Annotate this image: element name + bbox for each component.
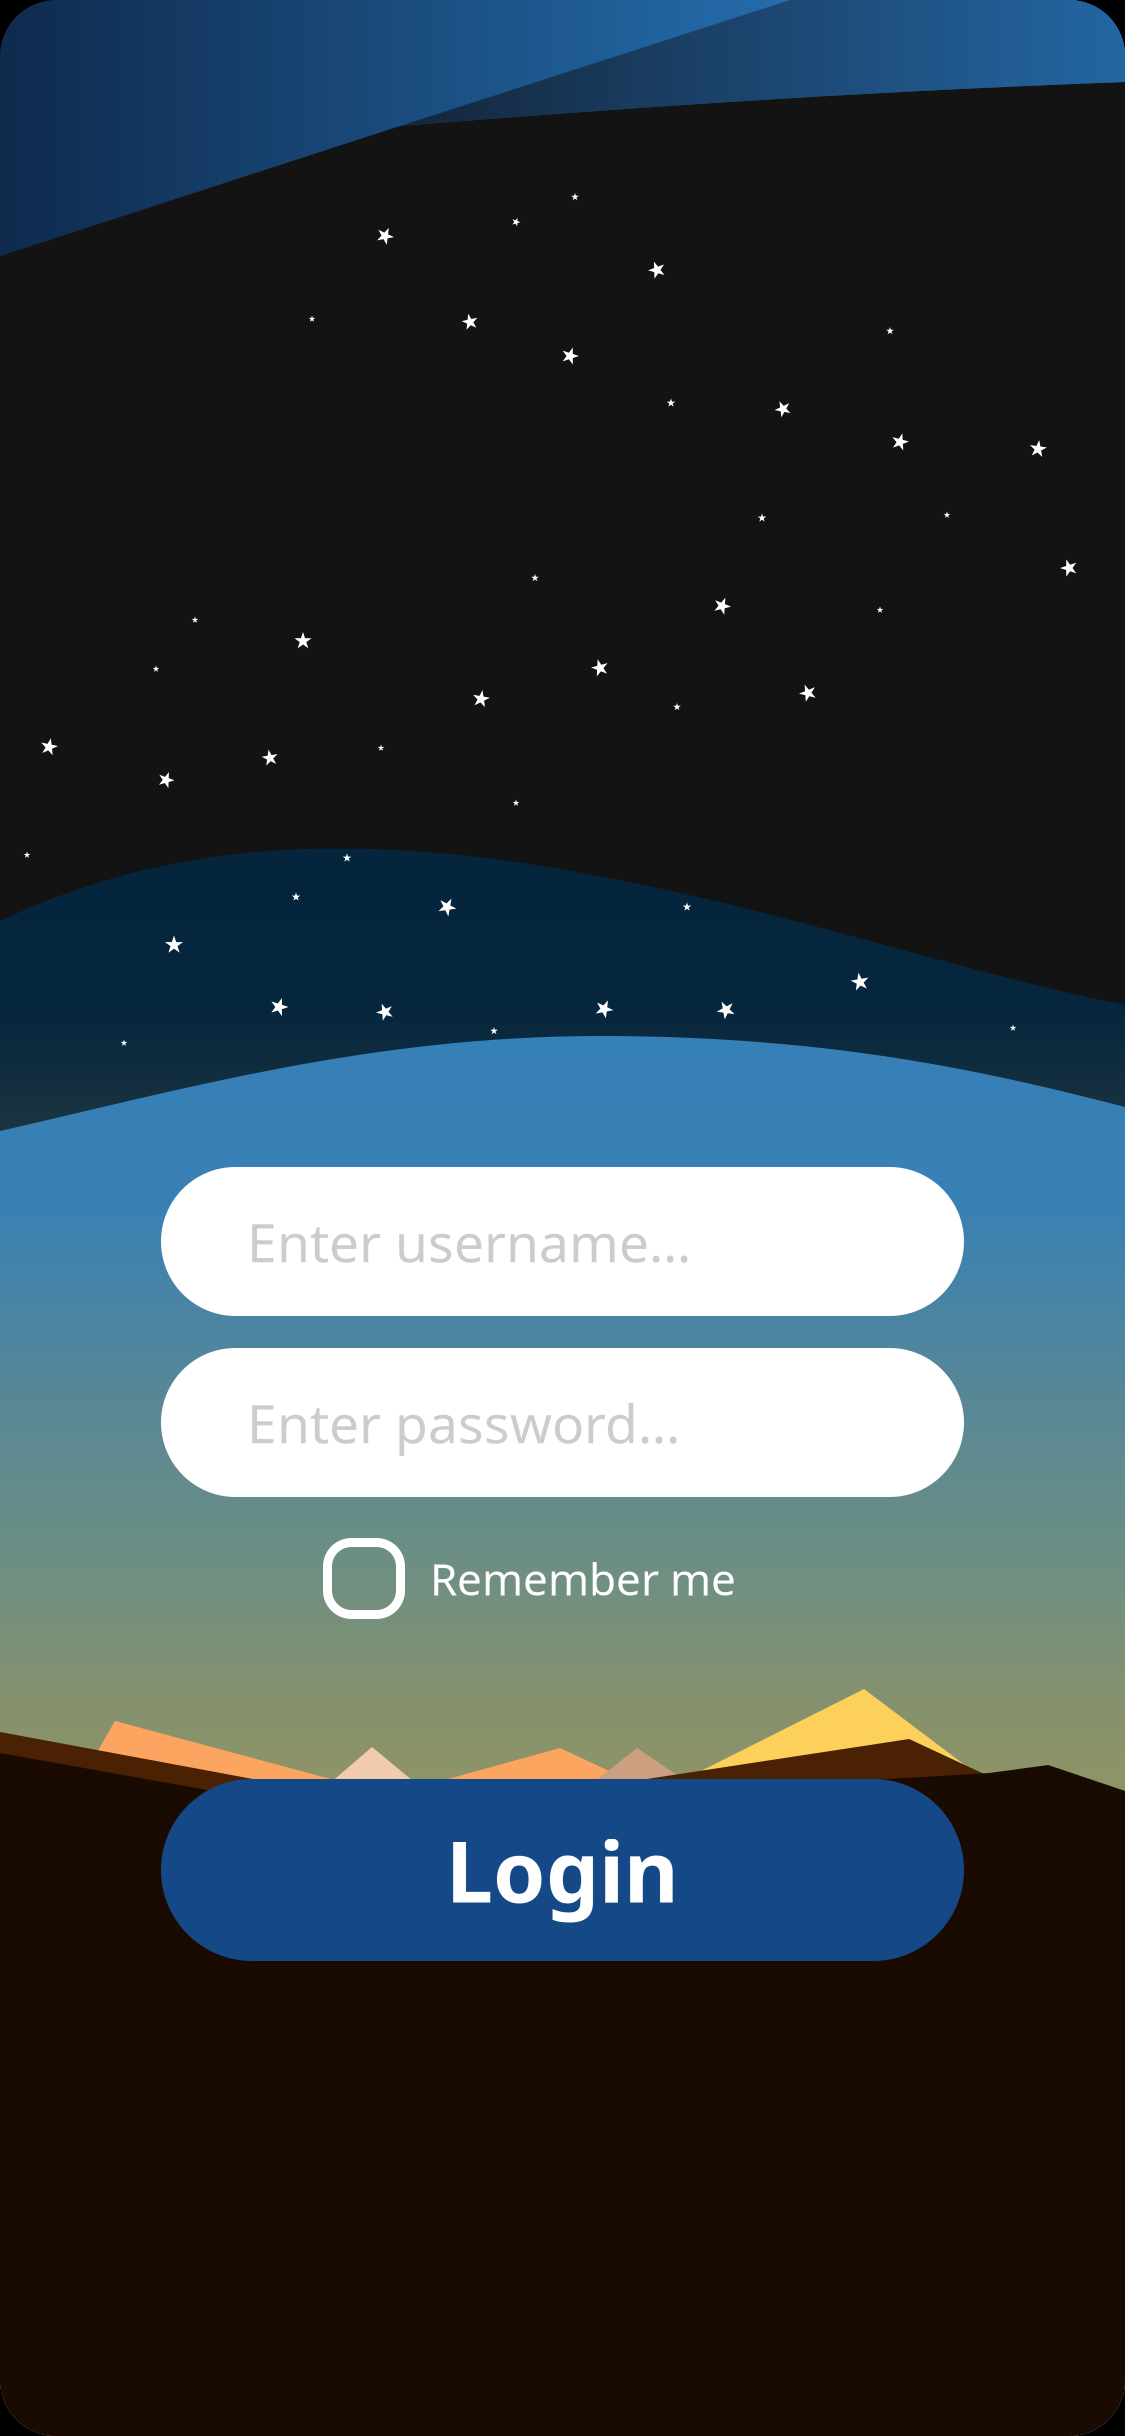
staticText: Remember me	[430, 1549, 736, 1608]
staticText: Login	[446, 1814, 679, 1926]
staticText: Enter password...	[247, 1387, 680, 1458]
button[interactable]: Remember me	[161, 1538, 761, 1619]
button[interactable]: Enter password...	[161, 1348, 964, 1497]
staticText: Enter username...	[247, 1206, 691, 1277]
button[interactable]: Enter username...	[161, 1167, 964, 1316]
button[interactable]: Login	[161, 1779, 964, 1961]
